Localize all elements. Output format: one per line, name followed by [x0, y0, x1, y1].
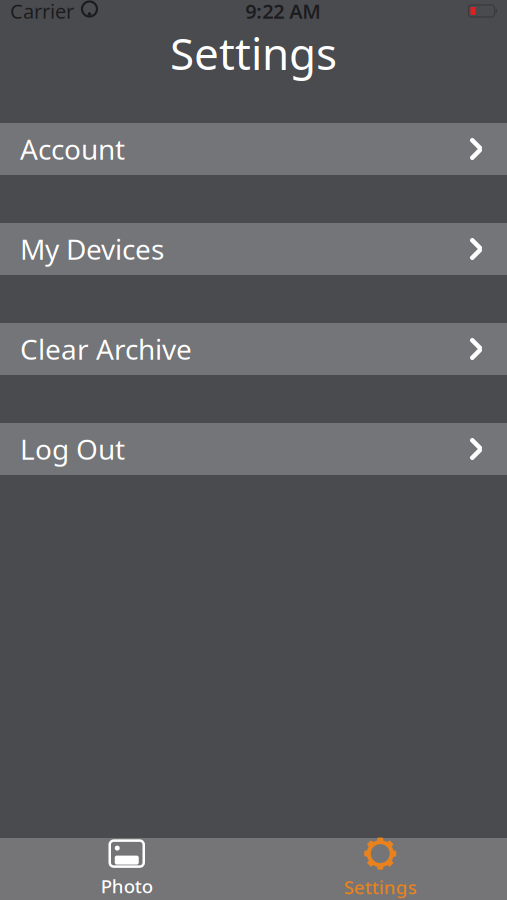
staticText: Settings — [344, 875, 417, 899]
staticText: Settings — [170, 24, 337, 82]
button[interactable]: Settings — [253, 838, 507, 900]
staticText: 9:22 AM — [245, 0, 321, 24]
staticText: Account — [20, 130, 125, 168]
staticText: My Devices — [20, 230, 164, 268]
button[interactable]: Photo — [0, 838, 253, 900]
staticText: Clear Archive — [20, 330, 192, 368]
button[interactable]: My Devices — [0, 223, 507, 275]
button[interactable]: Account — [0, 123, 507, 175]
button[interactable]: Log Out — [0, 423, 507, 475]
staticText: Log Out — [20, 430, 125, 468]
button[interactable]: Clear Archive — [0, 323, 507, 375]
staticText: Photo — [101, 874, 153, 898]
staticText: Carrier — [10, 0, 74, 24]
